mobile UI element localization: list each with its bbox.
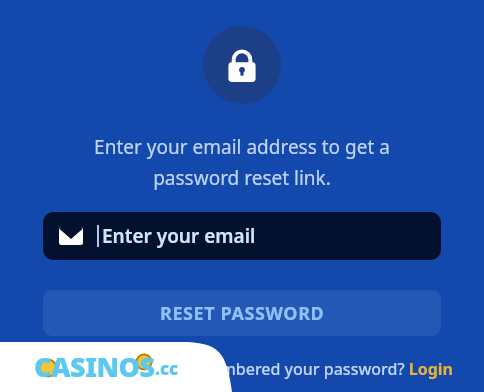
staticText: Enter your email address to get a passwo…	[40, 134, 444, 190]
button[interactable]: Remembered your password? Login	[177, 358, 454, 380]
button[interactable]: RESET PASSWORD	[43, 290, 441, 336]
staticText: Remembered your password? Login	[177, 358, 454, 380]
button[interactable]: Casinos.cc home	[34, 348, 182, 382]
staticText: CASINOS	[34, 348, 155, 382]
button[interactable]: Enter your email	[43, 212, 441, 260]
staticText: Enter your email	[102, 223, 256, 249]
staticText: .cc	[155, 357, 179, 380]
staticText: RESET PASSWORD	[160, 301, 325, 326]
